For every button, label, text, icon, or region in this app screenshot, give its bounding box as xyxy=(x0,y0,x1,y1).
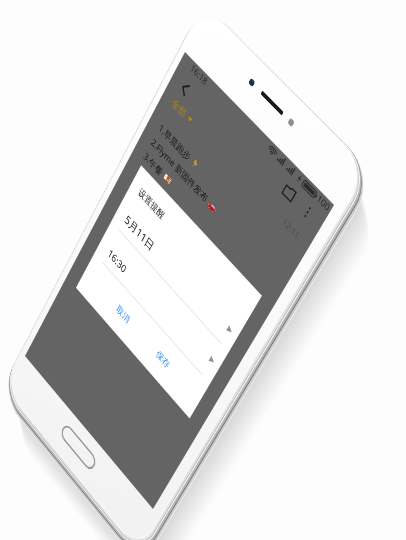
staticText: 16:18 xyxy=(188,61,210,88)
button[interactable]: 3.午餐 🍱 xyxy=(141,147,176,190)
button[interactable]: 1.早晨跑步 🏃 xyxy=(156,119,204,175)
staticText: 12:11 xyxy=(281,215,302,241)
staticText: 16:30 xyxy=(106,245,129,276)
button[interactable]: Back xyxy=(175,75,196,104)
staticText: 设置提醒 xyxy=(137,185,166,221)
button[interactable]: Home xyxy=(59,422,98,473)
staticText: 1.早晨跑步 🏃 xyxy=(157,120,203,174)
staticText: 全部 xyxy=(170,96,188,119)
staticText: 3.午餐 🍱 xyxy=(142,149,175,189)
button[interactable]: 取消 xyxy=(115,303,132,325)
button[interactable]: 全部 xyxy=(170,96,195,126)
staticText: 100 xyxy=(314,192,332,214)
button[interactable]: More options xyxy=(299,200,317,224)
staticText: 2.Flyme 新固件发布 🚗 xyxy=(150,135,220,215)
staticText: 5月11日 xyxy=(123,211,157,254)
button[interactable]: Folder xyxy=(278,179,300,208)
button[interactable]: 2.Flyme 新固件发布 🚗 xyxy=(149,133,221,217)
button[interactable]: 保存 xyxy=(155,348,172,370)
